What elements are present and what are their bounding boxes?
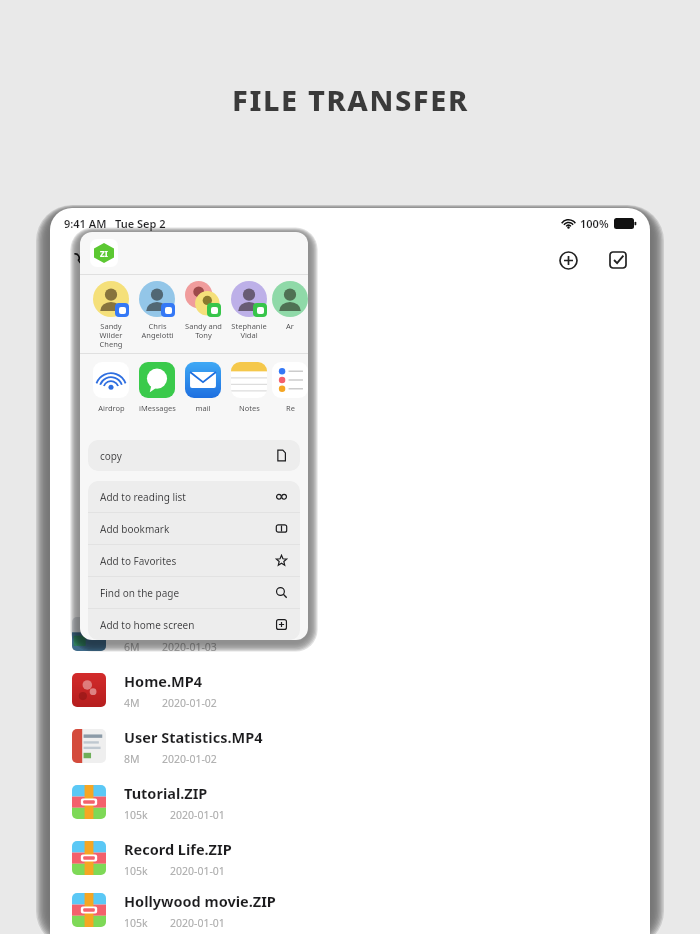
staticText: Add to home screen (100, 618, 195, 632)
staticText: Find on the page (100, 586, 180, 600)
button[interactable]: Airdrop (88, 354, 134, 413)
staticText: 2020-01-01 (170, 916, 225, 930)
staticText: 4M (124, 696, 140, 710)
staticText: 2020-01-03 (162, 640, 217, 654)
staticText: copy (100, 449, 122, 463)
staticText: Add to Favorites (100, 554, 177, 568)
button[interactable]: mail (180, 354, 226, 413)
button[interactable]: copy (88, 440, 300, 471)
button[interactable]: iMessages (134, 354, 180, 413)
staticText: ZI (100, 248, 108, 259)
button[interactable]: Add to home screen (88, 609, 300, 640)
button[interactable]: Add (552, 244, 584, 276)
button[interactable]: Tutorial.ZIP (50, 774, 650, 830)
staticText: Chris Angelotti (141, 321, 174, 340)
button[interactable]: Sample.MP4 (50, 606, 650, 662)
staticText: Home.MP4 (124, 671, 202, 691)
staticText: Hollywood movie.ZIP (124, 891, 276, 911)
staticText: Add bookmark (100, 522, 170, 536)
staticText: 100% (580, 216, 609, 231)
button[interactable]: Hollywood movie.ZIP (50, 886, 650, 934)
staticText: Record Life.ZIP (124, 839, 232, 859)
button[interactable]: Add bookmark (88, 513, 300, 544)
staticText: Sandy Wilder Cheng (88, 321, 134, 349)
staticText: Re (286, 403, 295, 413)
staticText: 9:41 AM Tue Sep 2 (64, 216, 166, 231)
staticText: FILE TRANSFER (232, 80, 469, 119)
button[interactable]: Ar (272, 275, 308, 331)
button[interactable]: Sandy Wilder Cheng (88, 275, 134, 349)
button[interactable]: Chris Angelotti (134, 275, 180, 340)
staticText: Ar (286, 321, 294, 331)
button[interactable]: User Statistics.MP4 (50, 718, 650, 774)
staticText: 2020-01-01 (170, 808, 225, 822)
button[interactable]: Re (272, 354, 308, 413)
staticText: 105k (124, 916, 148, 930)
button[interactable]: Phone (66, 245, 96, 275)
staticText: 8M (124, 752, 140, 766)
staticText: Sandy and Tony (185, 321, 222, 340)
staticText: 2020-01-02 (162, 752, 217, 766)
staticText: iMessages (139, 403, 176, 413)
staticText: 2020-01-01 (170, 864, 225, 878)
staticText: User Statistics.MP4 (124, 727, 263, 747)
staticText: 6M (124, 640, 140, 654)
staticText: 2020-01-02 (162, 696, 217, 710)
button[interactable]: Sandy and Tony (180, 275, 226, 340)
staticText: Add to reading list (100, 490, 186, 504)
staticText: Stephanie Vidal (231, 321, 267, 340)
button[interactable]: Select (602, 244, 634, 276)
staticText: 105k (124, 808, 148, 822)
button[interactable]: Add to Favorites (88, 545, 300, 576)
staticText: 105k (124, 864, 148, 878)
button[interactable]: Notes (226, 354, 272, 413)
staticText: mail (195, 403, 211, 413)
staticText: Airdrop (98, 403, 125, 413)
staticText: Tutorial.ZIP (124, 783, 208, 803)
staticText: Sample.MP4 (124, 615, 212, 635)
staticText: Notes (239, 403, 260, 413)
button[interactable]: Find on the page (88, 577, 300, 608)
button[interactable]: Add to reading list (88, 481, 300, 512)
button[interactable]: Record Life.ZIP (50, 830, 650, 886)
button[interactable]: Stephanie Vidal (226, 275, 272, 340)
button[interactable]: Home.MP4 (50, 662, 650, 718)
